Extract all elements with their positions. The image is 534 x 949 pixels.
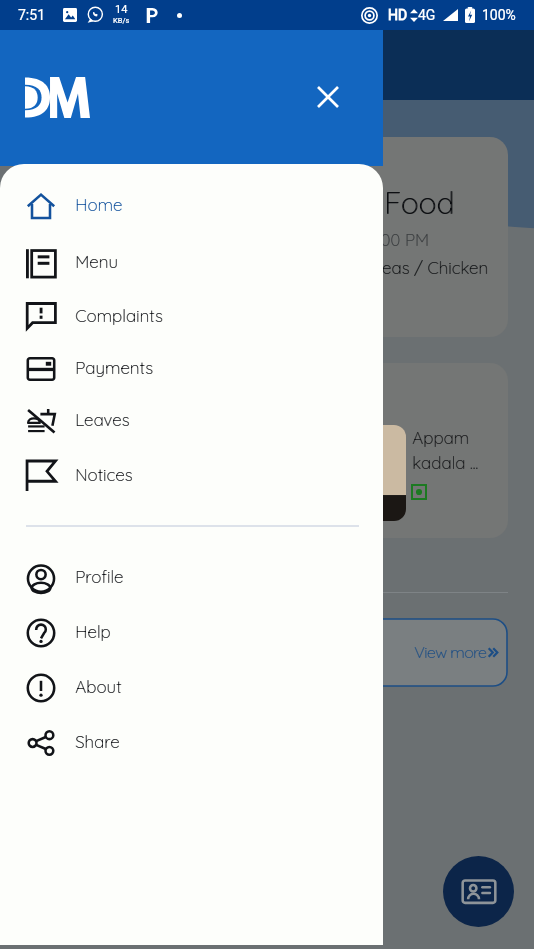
staticText: About xyxy=(75,676,122,697)
staticText: View more xyxy=(414,642,487,662)
staticText: Profile xyxy=(75,566,124,587)
staticText: Share xyxy=(75,731,120,752)
button[interactable]: Close drawer xyxy=(310,79,346,115)
staticText: Payments xyxy=(75,357,153,378)
staticText: Home xyxy=(75,194,123,215)
staticText: Leaves xyxy=(75,409,130,430)
button[interactable]: Complaints xyxy=(0,289,383,341)
staticText: Breakfast Food xyxy=(244,184,455,222)
staticText: Home xyxy=(75,194,123,215)
button[interactable]: Help xyxy=(0,605,383,657)
staticText: Breakfast Food xyxy=(245,184,456,222)
staticText: Menu xyxy=(75,251,118,272)
staticText: 6:30 AM - 9:00 PM xyxy=(292,229,429,250)
staticText: Profile xyxy=(75,566,124,587)
staticText: Appam kadala ... xyxy=(412,427,478,473)
staticText: Puttu / Green peas / Chicken xyxy=(263,257,488,278)
button[interactable]: Home xyxy=(0,178,383,230)
staticText: Menu xyxy=(75,251,118,272)
staticText: Help xyxy=(75,621,111,642)
button[interactable]: Appam kadala ... xyxy=(150,363,508,538)
button[interactable]: Breakfast Food xyxy=(150,137,508,337)
staticText: Complaints xyxy=(75,305,163,326)
button[interactable]: Contact card xyxy=(443,856,514,927)
staticText: Share xyxy=(75,731,120,752)
staticText: 14 xyxy=(115,3,128,16)
button[interactable]: Share xyxy=(0,715,383,767)
staticText: Help xyxy=(75,621,111,642)
staticText: Complaints xyxy=(75,305,163,326)
staticText: 100% xyxy=(482,7,516,23)
staticText: Leaves xyxy=(75,409,130,430)
staticText: View more xyxy=(414,642,487,662)
staticText: Notices xyxy=(75,464,133,485)
button[interactable]: View more xyxy=(150,618,508,687)
staticText: 6:30 AM - 9:00 PM xyxy=(292,229,429,250)
button[interactable]: Notices xyxy=(0,448,383,500)
staticText: 7:51 xyxy=(18,7,45,23)
staticText: Puttu / Green peas / Chicken xyxy=(263,257,488,278)
staticText: Payments xyxy=(75,357,153,378)
button[interactable]: Leaves xyxy=(0,393,383,445)
staticText: HD xyxy=(388,7,408,23)
staticText: Notices xyxy=(75,464,133,485)
staticText: KB/s xyxy=(113,16,130,25)
staticText: 4G xyxy=(418,7,436,23)
button[interactable]: About xyxy=(0,660,383,712)
button[interactable]: Menu xyxy=(0,235,383,287)
staticText: Appam kadala ... xyxy=(412,427,478,473)
button[interactable]: Payments xyxy=(0,341,383,393)
staticText: About xyxy=(75,676,122,697)
button[interactable]: Profile xyxy=(0,550,383,602)
